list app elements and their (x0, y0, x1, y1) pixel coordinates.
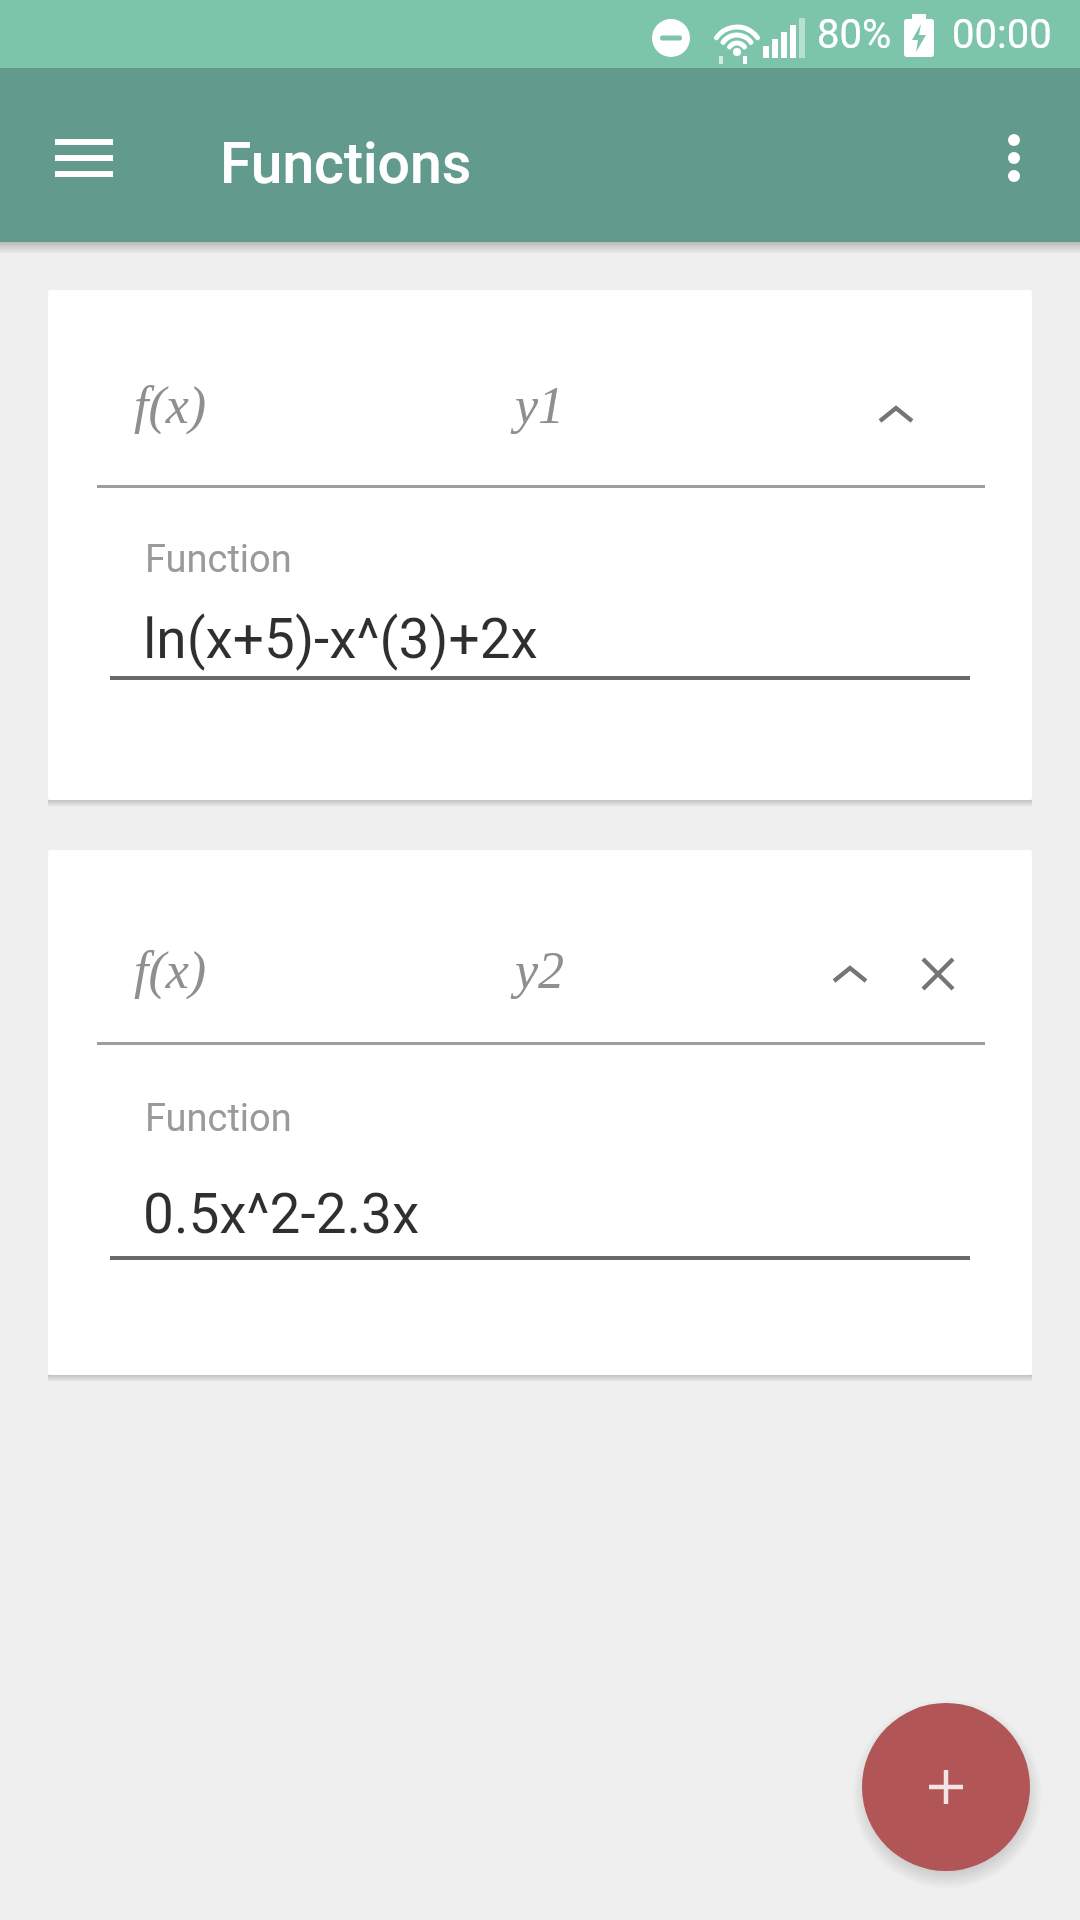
staticText: 00:00 (952, 11, 1052, 58)
staticText: Function (145, 1096, 292, 1141)
button[interactable] (808, 938, 892, 1010)
staticText: 80% (817, 11, 892, 58)
staticText: y2 (515, 942, 565, 1000)
button[interactable]: f(x) (134, 377, 207, 435)
staticText: Function (145, 537, 292, 582)
button[interactable]: ln(x+5)-x^(3)+2x (143, 607, 538, 671)
button[interactable] (854, 378, 938, 450)
button[interactable] (896, 938, 980, 1010)
staticText: y1 (515, 377, 565, 435)
button[interactable] (980, 124, 1048, 192)
button[interactable] (862, 1703, 1030, 1871)
button[interactable]: 0.5x^2-2.3x (143, 1182, 420, 1246)
staticText: Functions (220, 130, 472, 197)
button[interactable]: f(x) (134, 942, 207, 1000)
button[interactable] (40, 124, 128, 192)
